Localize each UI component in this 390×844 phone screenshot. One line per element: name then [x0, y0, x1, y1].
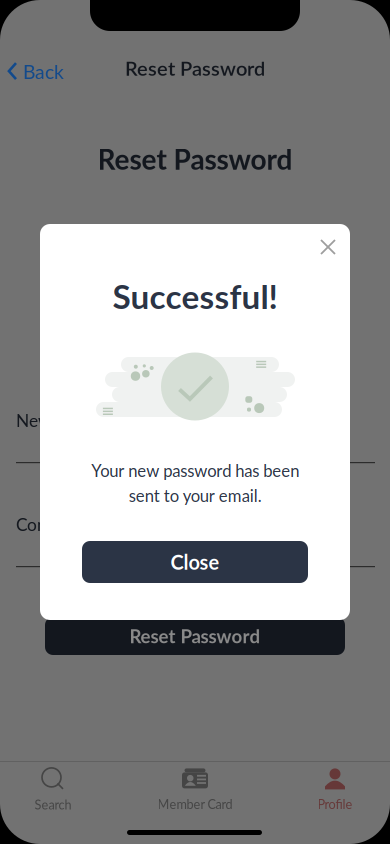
staticText: Search	[34, 797, 71, 812]
button[interactable]: Profile	[280, 768, 390, 812]
staticText: Back	[23, 60, 64, 83]
staticText: Reset Password	[97, 142, 292, 176]
staticText: Your new password has been sent to your …	[91, 460, 299, 505]
staticText: Confirm Password	[16, 514, 155, 535]
staticText: Successful!	[112, 276, 277, 316]
staticText: New Password	[16, 410, 129, 431]
button[interactable]: Member Card	[140, 768, 250, 812]
staticText: Close	[170, 550, 219, 574]
staticText: Member Card	[157, 796, 232, 812]
staticText: Reset Password	[129, 625, 260, 647]
button[interactable]: Close	[82, 541, 308, 583]
button[interactable]: Back	[0, 51, 72, 92]
staticText: Reset Password	[125, 56, 265, 80]
button[interactable]: Reset Password	[45, 617, 345, 655]
staticText: Profile	[317, 796, 352, 812]
button[interactable]: Close	[311, 230, 345, 264]
button[interactable]: Search	[0, 768, 108, 812]
